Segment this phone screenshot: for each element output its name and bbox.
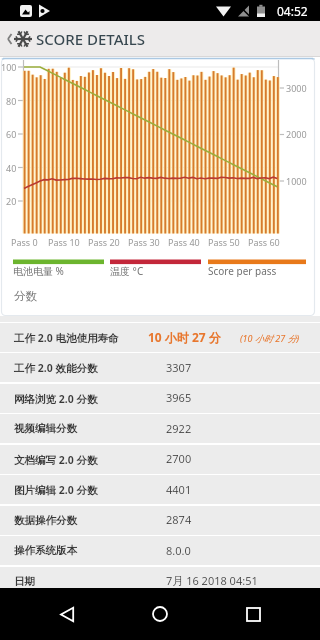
staticText: Pass 10 [48,236,80,248]
button[interactable] [44,591,90,637]
staticText: 2922 [166,421,192,436]
staticText: 2000 [286,128,307,140]
staticText: 分数 [14,289,37,303]
staticText: 100 [1,61,17,73]
staticText: 电池电量 % [13,264,64,277]
staticText: Pass 0 [11,236,38,248]
staticText: 视频编辑分数 [14,422,77,435]
staticText: 80 [6,95,17,107]
staticText: 2874 [166,512,192,527]
button[interactable]: 文档编写 2.0 分数 [0,445,320,474]
staticText: 图片编辑 2.0 分数 [14,483,98,497]
staticText: 8.0.0 [166,543,191,558]
staticText: 04:52 [277,3,308,19]
staticText: 3000 [286,82,307,94]
staticText: 10 小时 27 分 [148,329,221,345]
button[interactable]: 工作 2.0 电池使用寿命 [0,323,320,352]
button[interactable]: SCORE DETAILS [0,21,320,57]
staticText: 工作 2.0 效能分数 [14,361,98,375]
staticText: Pass 20 [88,236,120,248]
staticText: 40 [6,162,17,174]
staticText: 2700 [166,451,192,466]
staticText: 日期 [14,575,35,588]
staticText: 3965 [166,390,192,405]
button[interactable]: 操作系统版本 [0,536,320,565]
staticText: 1000 [286,175,307,187]
button[interactable] [137,591,183,637]
staticText: 文档编写 2.0 分数 [14,453,98,467]
staticText: SCORE DETAILS [36,29,146,49]
staticText: 工作 2.0 电池使用寿命 [14,331,119,345]
staticText: 温度 °C [110,264,144,277]
button[interactable]: 网络浏览 2.0 分数 [0,384,320,413]
staticText: 操作系统版本 [14,544,77,557]
staticText: Pass 30 [128,236,160,248]
staticText: Pass 50 [208,236,240,248]
staticText: Pass 40 [168,236,200,248]
staticText: (10 小时 27 分) [240,332,300,344]
staticText: 3307 [166,360,192,375]
button[interactable]: 日期 [0,567,320,596]
button[interactable] [230,591,276,637]
button[interactable]: 数据操作分数 [0,506,320,535]
button[interactable]: 视频编辑分数 [0,414,320,443]
staticText: 4401 [166,482,192,497]
staticText: 网络浏览 2.0 分数 [14,392,98,406]
staticText: Pass 60 [248,236,280,248]
button[interactable]: 图片编辑 2.0 分数 [0,475,320,504]
staticText: Score per pass [208,264,277,277]
staticText: 60 [6,128,17,140]
staticText: 数据操作分数 [14,514,77,527]
button[interactable]: 工作 2.0 效能分数 [0,353,320,382]
staticText: 7月 16 2018 04:51 [166,573,258,588]
staticText: 20 [6,195,17,207]
